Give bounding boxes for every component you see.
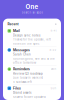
staticText: Due today in Work list <box>13 76 43 79</box>
button[interactable]: More options <box>55 23 56 25</box>
staticText: office tomorrow <box>13 61 36 64</box>
button[interactable]: Reminders <box>3 66 61 85</box>
staticText: Sarah Chen <box>13 53 31 56</box>
button[interactable]: Mail <box>3 28 61 46</box>
staticText: Review Q3 roadmap <box>13 72 43 75</box>
staticText: Thanks for the update, left <box>13 38 51 41</box>
staticText: 9:41 <box>50 29 56 32</box>
button[interactable]: Files <box>3 85 61 100</box>
staticText: 8:22 <box>49 48 56 51</box>
staticText: Messages <box>13 48 30 52</box>
staticText: Files <box>13 86 21 90</box>
staticText: Sun <box>50 86 56 90</box>
staticText: Recent <box>7 22 18 26</box>
staticText: Sounds good, see you at the <box>13 57 55 60</box>
staticText: 3 subtasks left <box>13 80 32 84</box>
button[interactable]: Messages <box>3 47 61 66</box>
staticText: Search all apps <box>21 11 42 14</box>
staticText: Mail <box>13 29 20 33</box>
staticText: Shared folder updated <box>13 95 46 99</box>
staticText: notes on the spec <box>13 42 40 45</box>
staticText: Reminders <box>13 67 30 71</box>
staticText: Mon <box>50 67 56 71</box>
staticText: Brand assets <box>13 91 31 94</box>
staticText: One <box>25 3 38 10</box>
staticText: Design sync notes <box>13 34 40 37</box>
